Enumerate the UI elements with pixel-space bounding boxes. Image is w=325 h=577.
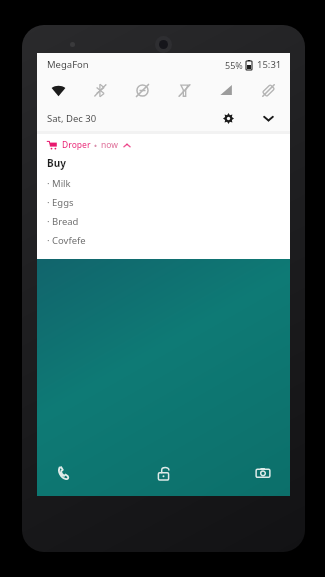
staticText: 55%	[225, 59, 243, 71]
button[interactable]: Do not disturb off	[121, 75, 163, 105]
staticText: Buy	[47, 156, 66, 170]
staticText: MegaFon	[47, 58, 89, 71]
button[interactable]: Droper	[37, 134, 290, 259]
button[interactable]: Unlock	[146, 456, 180, 490]
staticText: · Milk	[47, 177, 71, 190]
button[interactable]: Camera	[246, 456, 280, 490]
button[interactable]: Wi-Fi	[37, 75, 79, 105]
button[interactable]: Mobile data	[205, 75, 247, 105]
staticText: •	[94, 140, 98, 151]
staticText: now	[101, 139, 118, 151]
staticText: Sat, Dec 30	[47, 112, 97, 125]
staticText: 15:31	[257, 58, 282, 71]
button[interactable]: Auto rotate off	[247, 75, 289, 105]
button[interactable]: Collapse	[122, 140, 132, 150]
button[interactable]: Flashlight off	[163, 75, 205, 105]
button[interactable]: Bluetooth off	[79, 75, 121, 105]
button[interactable]: Settings	[218, 108, 238, 128]
staticText: · Eggs	[47, 196, 74, 209]
staticText: · Bread	[47, 215, 79, 228]
button[interactable]: Expand	[258, 108, 278, 128]
staticText: Droper	[62, 139, 91, 151]
staticText: · Covfefe	[47, 234, 86, 247]
button[interactable]: Phone	[47, 456, 81, 490]
